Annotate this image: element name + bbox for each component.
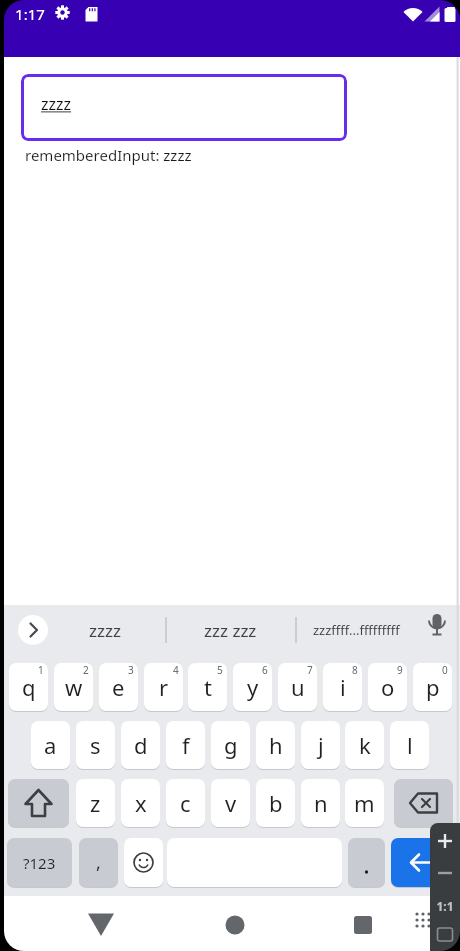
staticText: zzzz [89,619,121,642]
staticText: 0 [442,663,448,677]
staticText: 1:17 [15,4,45,24]
staticText: t [204,672,212,702]
staticText: b [269,788,283,818]
staticText: 1:1 [436,898,454,914]
button[interactable]: u [278,663,317,711]
staticText: e [112,672,125,702]
button[interactable] [124,838,163,887]
staticText: m [354,788,375,818]
staticText: w [65,672,83,702]
button[interactable]: j [301,721,340,769]
staticText: v [225,788,237,818]
button[interactable]: zzz zzz [180,612,280,648]
staticText: zzz zzz [204,619,257,642]
button[interactable]: zzzz [55,612,155,648]
button[interactable]: o [368,663,407,711]
staticText: rememberedInput: zzzz [25,145,192,165]
staticText: n [314,788,328,818]
staticText: zzzffff...fffffffff [313,621,400,639]
button[interactable] [348,838,385,887]
staticText: r [159,672,169,702]
button[interactable]: b [256,779,295,827]
staticText: c [180,788,191,818]
button[interactable]: k [345,721,384,769]
staticText: h [269,730,283,760]
button[interactable]: p [413,663,452,711]
staticText: i [340,672,346,702]
button[interactable]: e [99,663,138,711]
button[interactable]: zzzffff...fffffffff [300,612,412,648]
staticText: g [224,730,238,760]
staticText: 5 [217,663,223,677]
staticText: 9 [397,663,403,677]
button[interactable]: y [233,663,272,711]
button[interactable]: c [166,779,205,827]
staticText: zzzz [41,93,72,115]
staticText: u [291,672,305,702]
staticText: s [90,730,101,760]
staticText: x [135,788,147,818]
staticText: a [44,730,57,760]
button[interactable]: zzzz [21,74,347,141]
button[interactable]: l [390,721,429,769]
button[interactable]: ?123 [7,838,72,887]
staticText: 3 [128,663,134,677]
staticText: ?123 [23,853,56,873]
staticText: , [96,850,101,875]
staticText: p [426,672,440,702]
staticText: d [134,730,148,760]
button[interactable]: i [323,663,362,711]
button[interactable]: h [256,721,295,769]
button[interactable]: m [345,779,384,827]
button[interactable]: z [76,779,115,827]
button[interactable] [391,838,452,887]
staticText: j [318,730,324,760]
staticText: 4 [173,663,179,677]
button[interactable]: v [211,779,250,827]
staticText: 2 [83,663,89,677]
button[interactable]: n [301,779,340,827]
button[interactable] [430,823,460,951]
button[interactable]: a [31,721,70,769]
button[interactable]: x [121,779,160,827]
staticText: z [90,788,101,818]
button[interactable] [8,779,69,827]
staticText: 7 [307,663,313,677]
button[interactable]: d [121,721,160,769]
button[interactable]: g [211,721,250,769]
button[interactable]: t [188,663,227,711]
staticText: f [182,730,190,760]
staticText: 1 [38,663,44,677]
staticText: 6 [262,663,268,677]
staticText: 8 [352,663,358,677]
button[interactable]: r [144,663,183,711]
staticText: k [359,730,371,760]
staticText: o [381,672,395,702]
button[interactable]: w [54,663,93,711]
button[interactable]: s [76,721,115,769]
staticText: y [247,672,259,702]
button[interactable] [18,615,48,645]
staticText: l [407,730,413,760]
button[interactable] [394,779,453,827]
staticText: q [22,672,36,702]
button[interactable]: , [79,838,118,887]
button[interactable]: q [9,663,48,711]
button[interactable]: f [166,721,205,769]
